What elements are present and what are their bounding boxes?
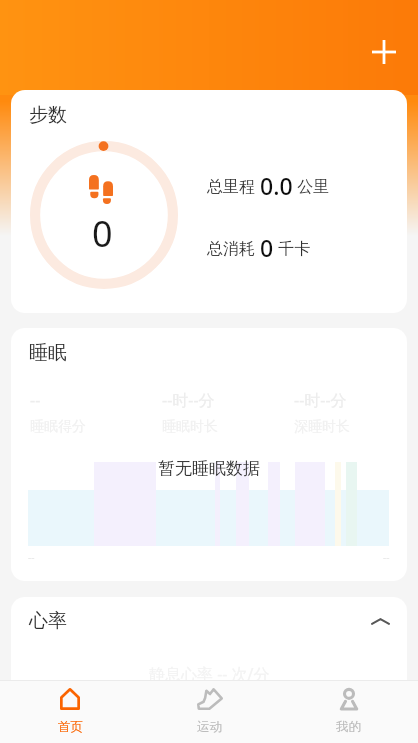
staticText: 静息心率 -- 次/分 — [149, 663, 270, 685]
button[interactable]: 心率 — [11, 597, 407, 645]
staticText: 我的 — [336, 719, 361, 735]
staticText: 心率 — [29, 609, 67, 633]
staticText: 暂无睡眠数据 — [158, 458, 260, 479]
staticText: --时--分 — [162, 389, 215, 411]
staticText: 运动 — [197, 719, 222, 735]
button[interactable]: 运动 — [140, 681, 279, 743]
staticText: 睡眠得分 — [30, 418, 86, 436]
staticText: 0.0 — [260, 170, 293, 201]
staticText: 首页 — [58, 719, 83, 735]
staticText: --时--分 — [294, 389, 347, 411]
staticText: 睡眠 — [29, 341, 67, 365]
staticText: 深睡时长 — [294, 418, 350, 436]
staticText: -- — [30, 389, 41, 411]
staticText: 0 — [92, 209, 113, 258]
staticText: 步数 — [29, 103, 67, 127]
staticText: 总消耗 — [207, 237, 260, 259]
staticText: 千卡 — [274, 237, 311, 259]
staticText: 0 — [260, 232, 274, 263]
staticText: -- — [28, 550, 35, 564]
button[interactable]: Add — [364, 32, 404, 72]
staticText: 睡眠时长 — [162, 418, 218, 436]
staticText: 公里 — [293, 175, 330, 197]
staticText: 总里程 — [207, 175, 260, 197]
button[interactable]: 我的 — [279, 681, 418, 743]
staticText: -- — [383, 550, 390, 564]
button[interactable]: 首页 — [0, 681, 140, 743]
